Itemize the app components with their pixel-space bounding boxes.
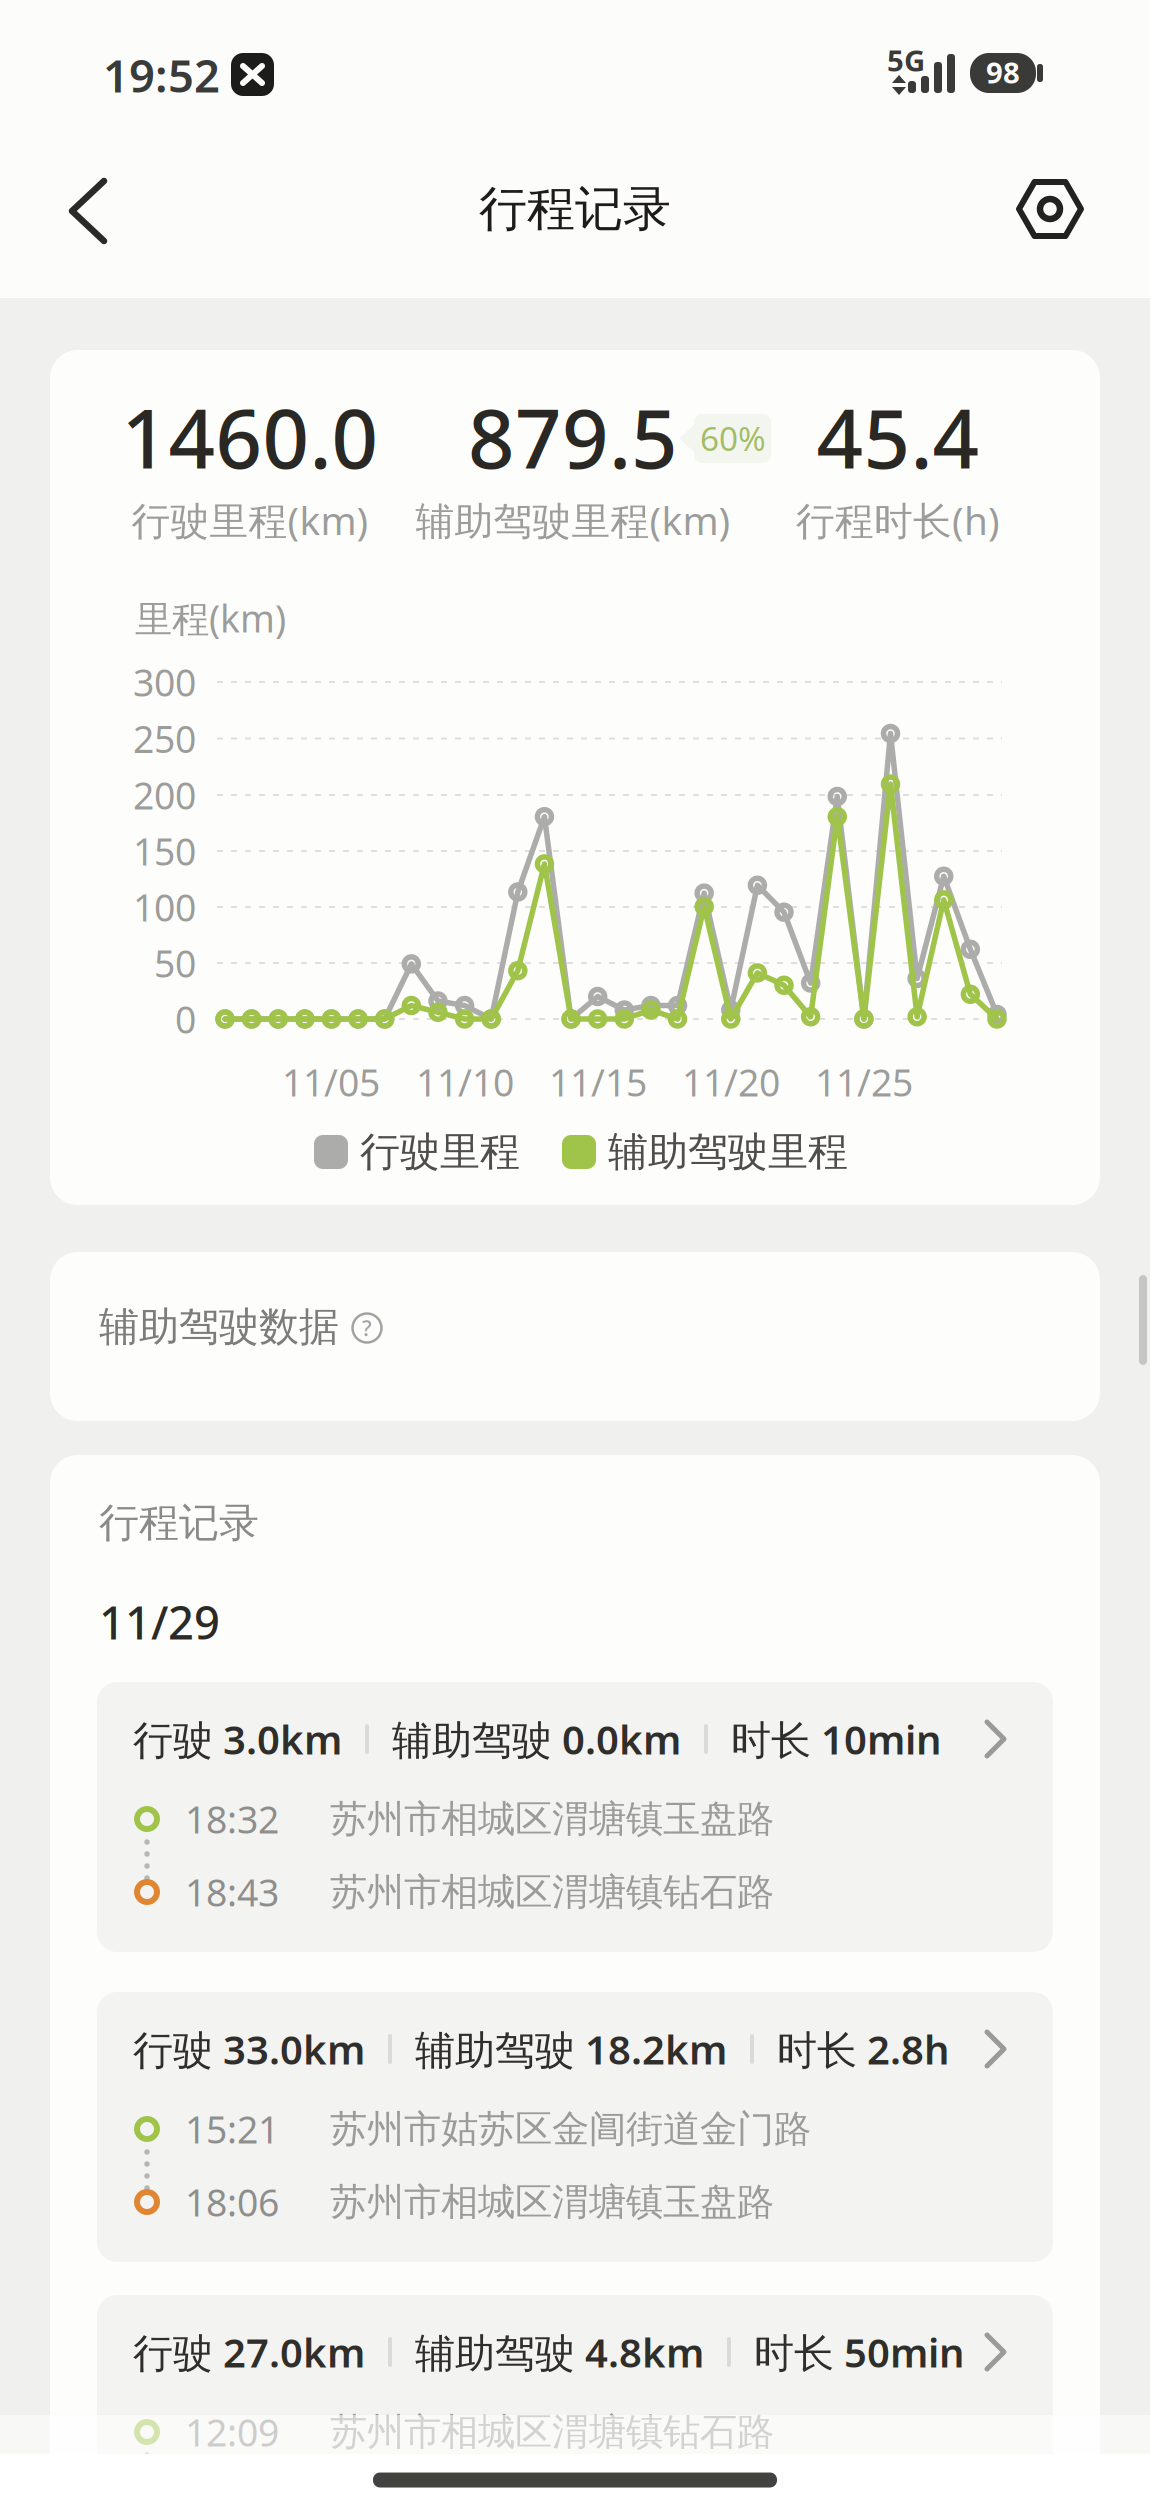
staticText: 5G [887, 40, 925, 79]
button[interactable]: 行驶 3.0km [97, 1682, 1053, 1952]
staticText: 辅助驾驶数据 [99, 1302, 339, 1351]
staticText: 1460.0 [121, 383, 378, 491]
staticText: 时长 50min [754, 2325, 965, 2378]
staticText: 11/25 [815, 1057, 913, 1107]
staticText: 行驶里程 [360, 1127, 520, 1176]
staticText: 11/15 [549, 1057, 647, 1107]
staticText: 98 [986, 52, 1020, 91]
staticText: 0 [175, 994, 196, 1044]
staticText: 苏州市相城区渭塘镇玉盘路 [330, 1796, 774, 1842]
staticText: ? [362, 1314, 372, 1342]
button[interactable]: 辅助驾驶数据 [50, 1252, 1100, 1421]
staticText: 200 [133, 770, 196, 820]
staticText: 19:52 [103, 45, 220, 105]
staticText: 行程记录 [99, 1498, 259, 1547]
button[interactable]: 设置 [1010, 182, 1090, 236]
staticText: 辅助驾驶里程 [608, 1127, 848, 1176]
staticText: 辅助驾驶 4.8km [415, 2325, 704, 2378]
staticText: 苏州市相城区渭塘镇玉盘路 [330, 2179, 774, 2225]
staticText: 里程(km) [135, 593, 286, 643]
button[interactable]: 返回 [52, 174, 142, 248]
staticText: 行驶 33.0km [133, 2022, 365, 2075]
staticText: 辅助驾驶 18.2km [415, 2022, 727, 2075]
button[interactable]: 行驶 27.0km [97, 2295, 1053, 2504]
staticText: 行驶 3.0km [133, 1712, 342, 1765]
staticText: 行驶 27.0km [133, 2325, 365, 2378]
staticText: 时长 2.8h [777, 2022, 950, 2075]
staticText: 行程时长(h) [796, 494, 1000, 546]
staticText: 行程记录 [479, 179, 671, 238]
staticText: 11/10 [416, 1057, 514, 1107]
staticText: 苏州市相城区渭塘镇钻石路 [330, 2409, 774, 2455]
staticText: 15:21 [185, 2104, 279, 2154]
staticText: 18:43 [185, 1867, 279, 1917]
staticText: 45.4 [816, 383, 979, 491]
staticText: 12:09 [185, 2407, 279, 2457]
staticText: 50 [154, 938, 196, 988]
staticText: 11/05 [282, 1057, 380, 1107]
staticText: 100 [133, 882, 196, 932]
staticText: 时长 10min [731, 1712, 942, 1765]
button[interactable]: 行驶 33.0km [97, 1992, 1053, 2262]
staticText: 60% [700, 416, 766, 460]
staticText: 879.5 [468, 383, 678, 491]
staticText: 辅助驾驶里程(km) [415, 494, 730, 546]
staticText: 150 [133, 826, 196, 876]
staticText: 300 [133, 657, 196, 707]
staticText: 行驶里程(km) [131, 494, 368, 546]
staticText: 18:32 [185, 1794, 279, 1844]
staticText: 辅助驾驶 0.0km [392, 1712, 681, 1765]
staticText: 苏州市姑苏区金阊街道金门路 [330, 2106, 811, 2152]
staticText: 250 [133, 714, 196, 763]
staticText: 11/29 [99, 1592, 220, 1652]
staticText: 18:06 [185, 2177, 279, 2227]
staticText: 苏州市相城区渭塘镇钻石路 [330, 1869, 774, 1915]
staticText: 11/20 [682, 1057, 780, 1107]
